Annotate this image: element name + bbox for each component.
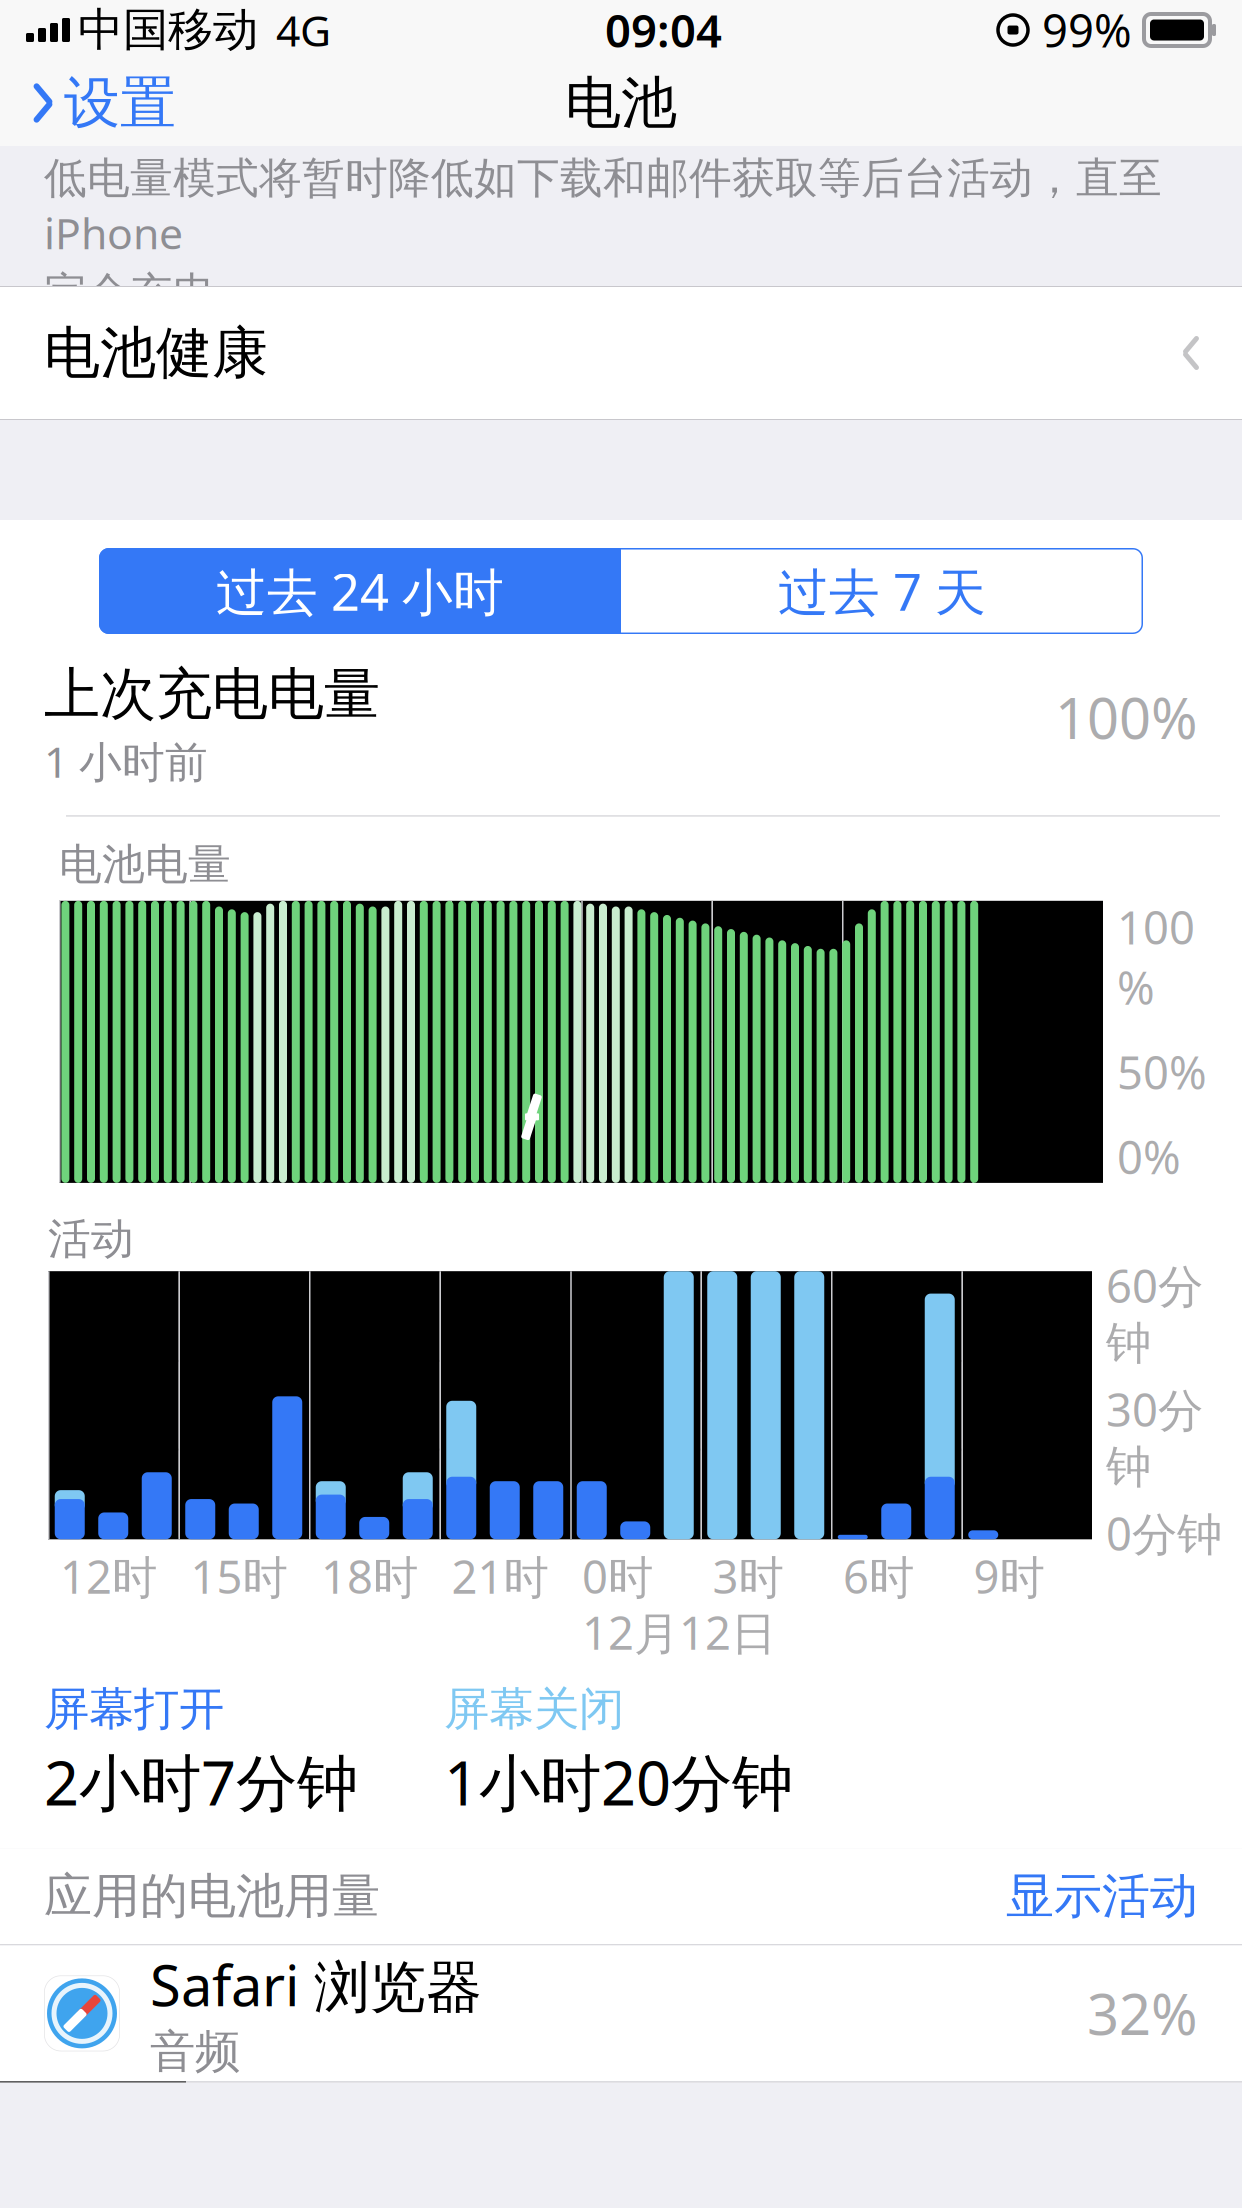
- staticText: 4G: [276, 2, 331, 58]
- staticText: 显示活动: [1006, 1867, 1198, 1926]
- staticText: 应用的电池用量: [44, 1867, 380, 1926]
- staticText: 完全充电。: [44, 267, 259, 319]
- staticText: 12月12日: [582, 1602, 776, 1662]
- button[interactable]: Safari 浏览器: [0, 1945, 1242, 2082]
- staticText: 上次充电电量: [44, 660, 380, 729]
- staticText: 1小时20分钟: [444, 1741, 793, 1822]
- staticText: Safari 浏览器: [150, 1947, 482, 2022]
- staticText: 屏幕关闭: [444, 1681, 624, 1737]
- staticText: 0分钟: [1106, 1503, 1222, 1563]
- staticText: 30分钟: [1106, 1379, 1203, 1495]
- button[interactable]: 过去 24 小时: [99, 548, 621, 634]
- staticText: 12时: [60, 1546, 157, 1606]
- staticText: 9时: [973, 1546, 1044, 1606]
- staticText: 3时: [712, 1546, 783, 1606]
- staticText: 50%: [1117, 1042, 1207, 1102]
- staticText: 活动: [48, 1213, 134, 1265]
- staticText: 电池健康: [44, 319, 268, 387]
- staticText: 设置: [64, 69, 176, 137]
- staticText: 0%: [1117, 1127, 1181, 1187]
- staticText: 电池: [565, 69, 677, 137]
- button[interactable]: 过去 7 天: [621, 548, 1143, 634]
- staticText: 1 小时前: [44, 733, 208, 789]
- staticText: 音频: [150, 2024, 240, 2080]
- staticText: 屏幕打开: [44, 1681, 224, 1737]
- staticText: 2小时7分钟: [44, 1741, 358, 1822]
- staticText: 18时: [321, 1546, 418, 1606]
- button[interactable]: 设置: [0, 60, 190, 146]
- staticText: 60分钟: [1106, 1255, 1203, 1371]
- button[interactable]: 显示活动: [1006, 1867, 1198, 1926]
- staticText: 32%: [1087, 1976, 1198, 2051]
- staticText: 过去 24 小时: [216, 557, 504, 625]
- staticText: 99%: [1042, 0, 1132, 60]
- staticText: 电池电量: [59, 838, 231, 891]
- staticText: 中国移动: [78, 2, 258, 58]
- staticText: 低电量模式将暂时降低如下载和邮件获取等后台活动，直至 iPhone: [44, 152, 1162, 261]
- staticText: 09:04: [605, 0, 722, 60]
- staticText: 15时: [190, 1546, 287, 1606]
- button[interactable]: 电池健康: [0, 287, 1242, 419]
- staticText: 0时: [582, 1546, 653, 1606]
- staticText: 100%: [1055, 680, 1198, 754]
- staticText: 过去 7 天: [778, 557, 986, 625]
- staticText: 6时: [843, 1546, 914, 1606]
- staticText: 21时: [451, 1546, 548, 1606]
- staticText: 100%: [1117, 897, 1195, 1017]
